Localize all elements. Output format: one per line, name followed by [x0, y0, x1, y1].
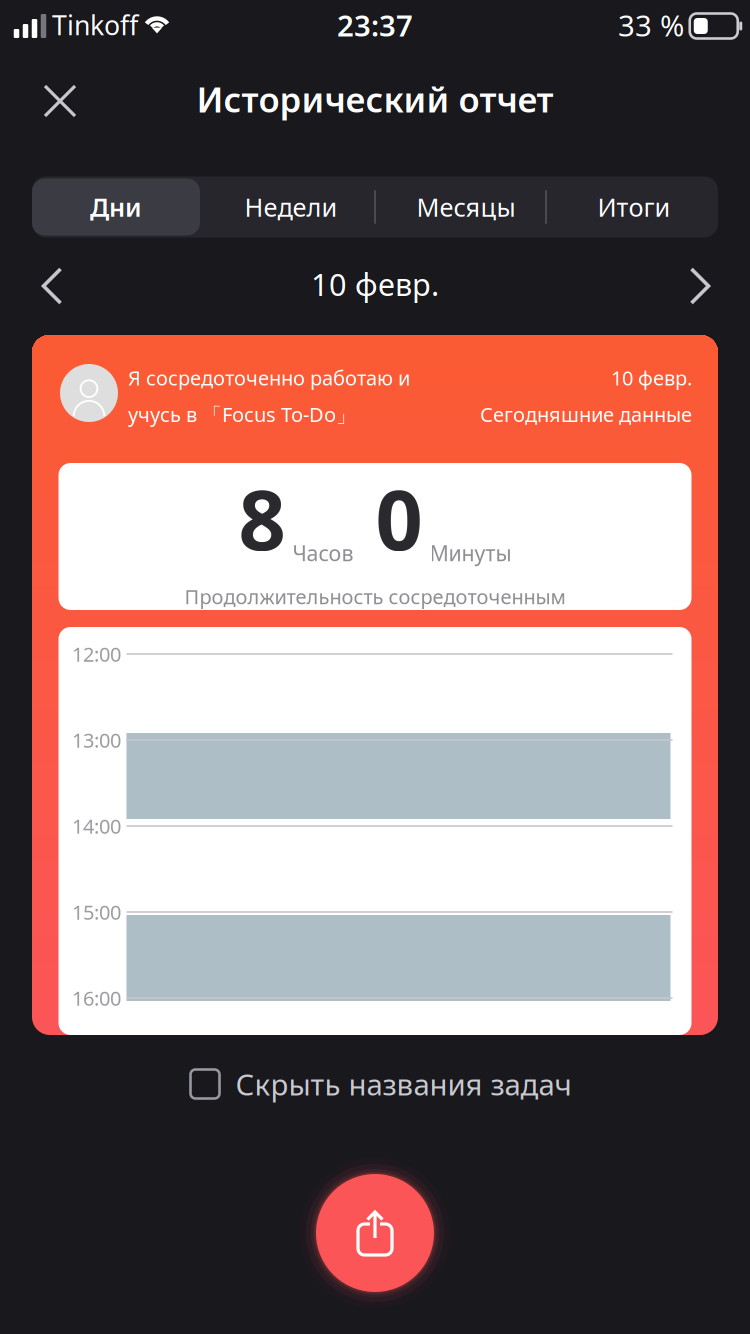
staticText: Исторический отчет [196, 76, 553, 122]
staticText: 13:00 [72, 727, 121, 753]
staticText: учусь в 「Focus To-Do」 [128, 401, 356, 428]
staticText: Скрыть названия задач [235, 1064, 571, 1103]
staticText: Дни [90, 190, 142, 224]
button[interactable]: Итоги [564, 178, 704, 235]
staticText: Минуты [429, 539, 511, 567]
staticText: Часов [292, 539, 353, 567]
staticText: 16:00 [72, 985, 121, 1011]
button[interactable]: Предыдущий день [17, 251, 87, 321]
staticText: Сегодняшние данные [480, 401, 692, 428]
button[interactable]: Месяцы [395, 178, 537, 235]
button[interactable]: Следующий день [665, 251, 735, 321]
button[interactable]: Поделиться [300, 1158, 450, 1308]
staticText: 33 % [618, 5, 684, 44]
button[interactable]: Дни [32, 178, 200, 235]
staticText: Итоги [597, 190, 670, 224]
staticText: Tinkoff [52, 7, 138, 43]
staticText: 10 февр. [311, 264, 439, 304]
staticText: 15:00 [72, 899, 121, 925]
staticText: 0 [375, 463, 422, 573]
staticText: 12:00 [72, 641, 121, 667]
staticText: Продолжительность сосредоточенным [184, 583, 565, 610]
staticText: Я сосредоточенно работаю и [128, 364, 410, 391]
button[interactable]: Недели [220, 178, 362, 235]
staticText: Недели [244, 190, 337, 224]
staticText: 23:37 [337, 5, 413, 44]
staticText: 8 [238, 463, 285, 573]
button[interactable]: Закрыть [27, 68, 93, 134]
staticText: 10 февр. [611, 364, 692, 391]
staticText: Месяцы [416, 190, 515, 224]
button[interactable]: Скрыть названия задач [190, 1051, 571, 1117]
staticText: 14:00 [72, 813, 121, 839]
